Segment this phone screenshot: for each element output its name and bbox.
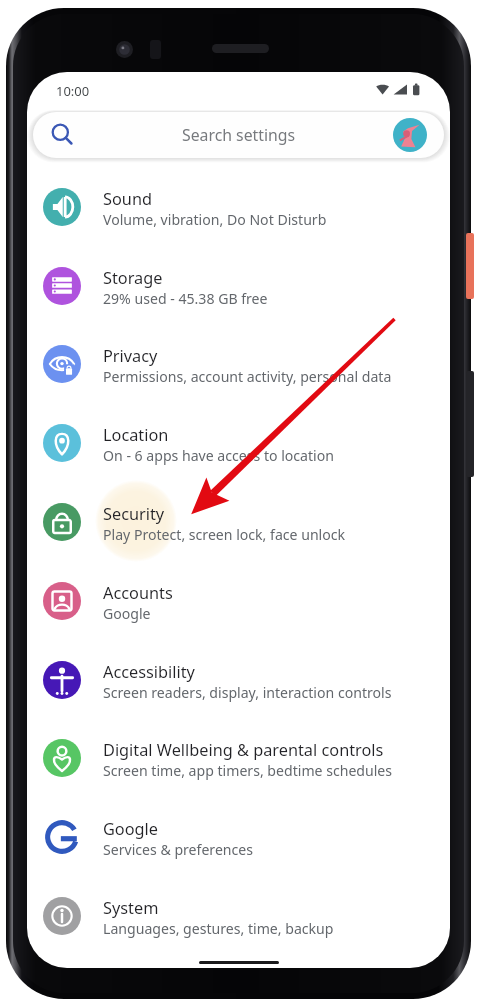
staticText: Play Protect, screen lock, face unlock — [103, 525, 346, 544]
staticText: On - 6 apps have access to location — [103, 446, 334, 465]
staticText: Security — [103, 503, 165, 525]
staticText: Privacy — [103, 345, 158, 367]
staticText: Storage — [103, 267, 163, 289]
staticText: Accessibility — [103, 661, 195, 683]
button[interactable]: Account avatar — [393, 118, 427, 152]
button[interactable]: Security — [27, 491, 450, 569]
staticText: Services & preferences — [103, 840, 254, 859]
button[interactable]: Location — [27, 412, 450, 490]
staticText: 29% used - 45.38 GB free — [103, 289, 268, 308]
staticText: Screen readers, display, interaction con… — [103, 683, 392, 702]
staticText: Languages, gestures, time, backup — [103, 919, 334, 938]
button[interactable]: Digital Wellbeing & parental controls — [27, 727, 450, 805]
staticText: Google — [103, 818, 159, 840]
button[interactable]: Google — [27, 806, 450, 884]
button[interactable]: Privacy — [27, 333, 450, 411]
staticText: Digital Wellbeing & parental controls — [103, 739, 384, 761]
button[interactable]: Accounts — [27, 570, 450, 648]
staticText: Location — [103, 424, 169, 446]
button[interactable]: System — [27, 885, 450, 963]
button[interactable]: Sound — [27, 176, 450, 254]
staticText: System — [103, 897, 159, 919]
staticText: Accounts — [103, 582, 173, 604]
staticText: Volume, vibration, Do Not Disturb — [103, 210, 327, 229]
staticText: 10:00 — [56, 82, 90, 100]
staticText: Permissions, account activity, personal … — [103, 367, 392, 386]
staticText: Screen time, app timers, bedtime schedul… — [103, 761, 393, 780]
staticText: Sound — [103, 188, 152, 210]
staticText: Google — [103, 604, 151, 623]
staticText: Search settings — [182, 124, 296, 146]
button[interactable]: Storage — [27, 255, 450, 333]
button[interactable]: Accessibility — [27, 649, 450, 727]
button[interactable]: Search settings — [33, 112, 444, 158]
